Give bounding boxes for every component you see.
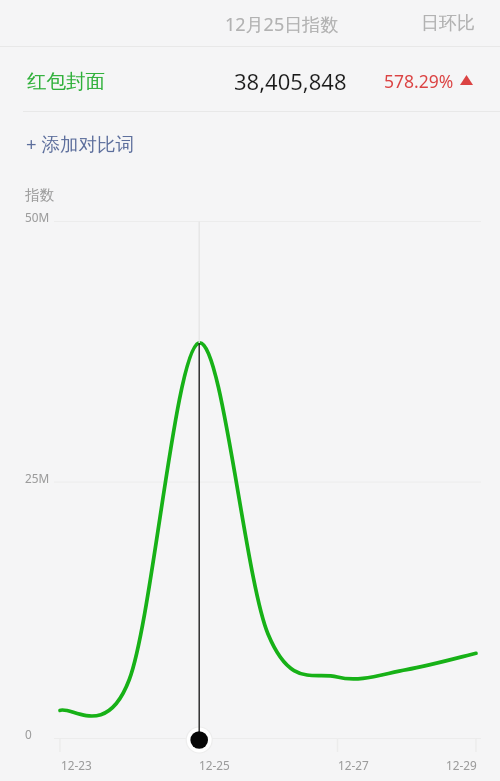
- staticText: 12-23: [61, 757, 92, 773]
- button[interactable]: 红包封面: [0, 47, 500, 111]
- staticText: 12-25: [199, 757, 230, 773]
- staticText: 38,405,848: [234, 66, 347, 96]
- staticText: 12月25日指数: [225, 12, 339, 37]
- staticText: 0: [25, 726, 32, 742]
- staticText: 指数: [25, 186, 54, 204]
- staticText: 50M: [25, 209, 50, 225]
- other: Rising: [460, 75, 473, 85]
- button[interactable]: 12月25日指数: [225, 12, 345, 38]
- staticText: 红包封面: [27, 69, 105, 94]
- staticText: 日环比: [421, 12, 475, 35]
- staticText: 578.29%: [384, 69, 454, 93]
- button[interactable]: + 添加对比词: [0, 112, 500, 174]
- staticText: + 添加对比词: [26, 131, 134, 156]
- staticText: 12-27: [338, 757, 369, 773]
- button[interactable]: 日环比: [421, 12, 477, 38]
- staticText: 12-29: [446, 757, 477, 773]
- staticText: 25M: [25, 470, 50, 486]
